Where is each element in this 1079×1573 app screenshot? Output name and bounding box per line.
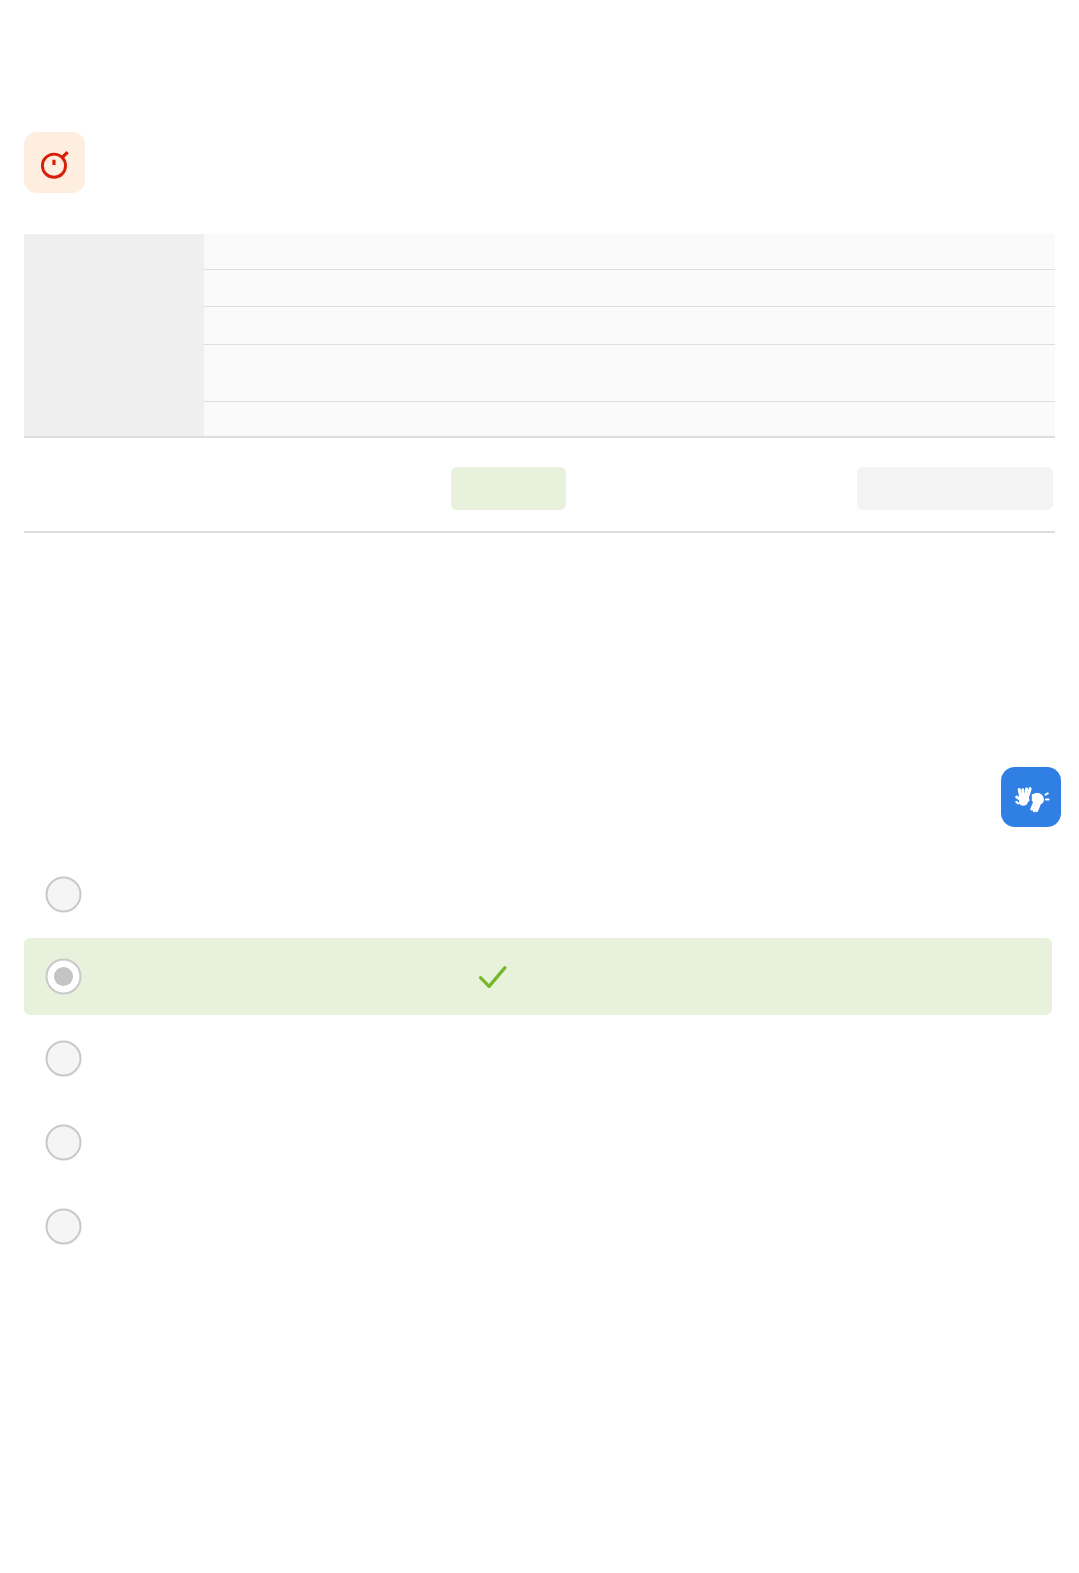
button[interactable]: [24, 270, 1055, 306]
button[interactable]: Sign language accessibility: [1001, 767, 1061, 827]
button[interactable]: [24, 307, 1055, 344]
button[interactable]: [24, 938, 1052, 1015]
button[interactable]: [24, 402, 1055, 436]
button[interactable]: [24, 234, 1055, 269]
button[interactable]: [24, 345, 1055, 401]
button[interactable]: Timer: [24, 132, 85, 193]
